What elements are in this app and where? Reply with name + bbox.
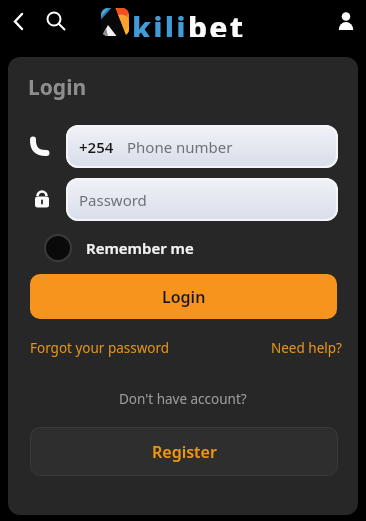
button[interactable] [4,7,34,37]
staticText: kili [132,7,188,37]
button[interactable]: +254 [66,125,338,168]
button[interactable]: Forgot your password [30,339,170,357]
button[interactable]: Remember me [44,234,194,262]
staticText: Password [79,190,147,210]
button[interactable]: Register [30,427,338,476]
button[interactable]: Need help? [271,339,342,357]
button[interactable] [40,5,72,37]
staticText: bet [188,7,246,37]
staticText: Register [152,441,217,463]
staticText: Phone number [127,137,233,157]
button[interactable] [332,4,360,32]
button[interactable]: kili [101,7,246,37]
staticText: +254 [79,137,114,157]
staticText: Remember me [86,238,194,258]
button[interactable]: Password [66,178,338,221]
button[interactable]: Login [30,274,337,319]
staticText: Login [162,286,206,308]
staticText: Login [28,73,87,102]
staticText: Don't have account? [119,390,247,408]
